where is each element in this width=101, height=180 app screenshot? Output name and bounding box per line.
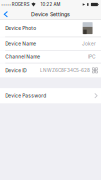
staticText: ROGERS bbox=[12, 2, 30, 7]
staticText: Device Name bbox=[5, 41, 36, 46]
button[interactable]: Device Password bbox=[0, 88, 101, 103]
button[interactable]: Device Name bbox=[0, 37, 101, 50]
staticText: Device Photo bbox=[5, 25, 36, 31]
staticText: LNWZ6C8F34C5-628 bbox=[40, 68, 90, 73]
staticText: Channel Name bbox=[5, 54, 40, 60]
button[interactable]: Channel Name bbox=[0, 50, 101, 63]
button[interactable]: Device Photo bbox=[0, 19, 101, 37]
staticText: Device Password bbox=[5, 93, 46, 99]
staticText: Joker bbox=[82, 41, 96, 46]
button[interactable]: Device ID bbox=[0, 63, 101, 77]
staticText: ••••• bbox=[1, 3, 11, 6]
button[interactable]: Back bbox=[0, 9, 12, 19]
staticText: Device Settings bbox=[31, 11, 70, 17]
staticText: IPC bbox=[88, 54, 96, 60]
staticText: Device ID bbox=[5, 67, 26, 73]
staticText: 10:22 AM bbox=[40, 2, 60, 7]
